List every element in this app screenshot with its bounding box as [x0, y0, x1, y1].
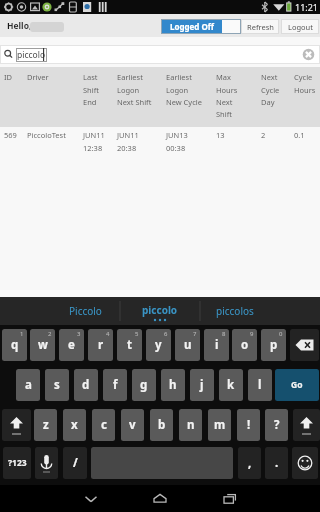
staticText: /: [73, 455, 78, 471]
staticText: Go: [291, 379, 303, 391]
button[interactable]: Delete: [290, 329, 319, 361]
button[interactable]: w: [30, 329, 55, 361]
staticText: e: [68, 337, 75, 353]
button[interactable]: Piccolo: [0, 297, 120, 325]
button[interactable]: Clear search: [302, 48, 315, 61]
button[interactable]: Home: [140, 485, 180, 512]
button[interactable]: ,: [238, 447, 261, 479]
staticText: 1: [20, 330, 24, 338]
button[interactable]: v: [121, 409, 144, 441]
button[interactable]: d: [74, 369, 98, 401]
staticText: h: [169, 377, 177, 393]
staticText: Cycle Hours: [294, 72, 316, 95]
button[interactable]: e: [59, 329, 84, 361]
button[interactable]: piccolo: [120, 297, 200, 325]
staticText: piccolos: [216, 304, 254, 318]
button[interactable]: k: [219, 369, 243, 401]
button[interactable]: m: [208, 409, 231, 441]
button[interactable]: i: [204, 329, 229, 361]
button[interactable]: /: [63, 447, 87, 479]
staticText: Earliest Logon New Cycle: [166, 72, 202, 107]
button[interactable]: a: [16, 369, 40, 401]
button[interactable]: Shift: [293, 409, 320, 441]
button[interactable]: ?123: [3, 447, 31, 479]
staticText: c: [101, 417, 107, 433]
staticText: 7: [193, 330, 197, 338]
button[interactable]: Voice input: [35, 447, 58, 479]
button[interactable]: .: [265, 447, 288, 479]
staticText: Next Cycle Day: [261, 72, 280, 107]
button[interactable]: h: [161, 369, 185, 401]
staticText: s: [54, 377, 60, 393]
staticText: !: [247, 417, 251, 433]
staticText: Logged Off: [170, 21, 214, 32]
button[interactable]: Recent apps: [210, 485, 250, 512]
staticText: Max Hours Next Shift: [216, 72, 238, 119]
button[interactable]: u: [175, 329, 200, 361]
button[interactable]: j: [190, 369, 214, 401]
button[interactable]: g: [132, 369, 156, 401]
button[interactable]: Refresh: [241, 19, 279, 34]
button[interactable]: p: [261, 329, 286, 361]
staticText: Last Shift End: [83, 72, 99, 107]
staticText: Refresh: [247, 22, 274, 32]
staticText: w: [38, 337, 48, 353]
staticText: o: [241, 337, 249, 353]
button[interactable]: z: [34, 409, 57, 441]
button[interactable]: o: [232, 329, 257, 361]
staticText: 8: [222, 330, 226, 338]
staticText: 0: [279, 330, 283, 338]
staticText: n: [187, 417, 195, 433]
staticText: Hello,: [7, 20, 32, 32]
staticText: 9: [250, 330, 254, 338]
button[interactable]: Logged Off: [161, 19, 241, 34]
staticText: p: [270, 337, 278, 353]
button[interactable]: b: [150, 409, 173, 441]
staticText: JUN11 12:38: [83, 130, 105, 153]
staticText: 5: [135, 330, 139, 338]
staticText: x: [71, 417, 78, 433]
staticText: v: [129, 417, 136, 433]
button[interactable]: c: [92, 409, 115, 441]
staticText: .: [275, 455, 279, 471]
button[interactable]: Emoji: [292, 447, 318, 479]
staticText: 2: [261, 130, 266, 140]
staticText: r: [98, 337, 104, 353]
button[interactable]: s: [45, 369, 69, 401]
staticText: piccolo: [17, 49, 46, 61]
button[interactable]: piccolos: [200, 297, 320, 325]
button[interactable]: t: [117, 329, 142, 361]
button[interactable]: 569: [0, 127, 320, 159]
staticText: JUN11 20:38: [117, 130, 139, 153]
button[interactable]: y: [146, 329, 171, 361]
button[interactable]: Logout: [281, 19, 319, 34]
staticText: t: [127, 337, 132, 353]
button[interactable]: x: [63, 409, 86, 441]
staticText: k: [227, 377, 235, 393]
staticText: ,: [248, 455, 252, 471]
staticText: i: [215, 337, 219, 353]
button[interactable]: f: [103, 369, 127, 401]
button[interactable]: ?: [265, 409, 288, 441]
staticText: d: [82, 377, 90, 393]
button[interactable]: Shift: [2, 409, 31, 441]
button[interactable]: l: [248, 369, 272, 401]
staticText: 13: [216, 130, 225, 140]
button[interactable]: n: [179, 409, 202, 441]
staticText: Driver: [27, 72, 49, 82]
button[interactable]: !: [237, 409, 260, 441]
button[interactable]: Go: [275, 369, 319, 401]
staticText: a: [25, 377, 32, 393]
staticText: 2: [48, 330, 52, 338]
staticText: JUN13 00:38: [166, 130, 188, 153]
button[interactable]: q: [2, 329, 27, 361]
staticText: ID: [4, 72, 13, 82]
button[interactable]: r: [88, 329, 113, 361]
staticText: Logout: [288, 22, 313, 32]
button[interactable]: Back: [71, 485, 111, 512]
staticText: b: [158, 417, 166, 433]
staticText: Earliest Logon Next Shift: [117, 72, 152, 107]
staticText: l: [258, 377, 262, 393]
staticText: 6: [164, 330, 168, 338]
